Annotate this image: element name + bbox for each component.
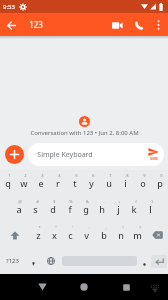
staticText: 123 bbox=[29, 19, 43, 30]
staticText: v bbox=[84, 229, 89, 241]
staticText: SMS bbox=[150, 156, 158, 161]
staticText: m bbox=[133, 229, 142, 241]
button[interactable] bbox=[76, 279, 92, 295]
button[interactable] bbox=[108, 16, 126, 34]
button[interactable]: t bbox=[66, 170, 83, 196]
staticText: ?123 bbox=[6, 257, 19, 265]
staticText: r bbox=[56, 177, 60, 189]
staticText: 2 bbox=[24, 173, 27, 178]
staticText: z bbox=[36, 229, 41, 241]
button[interactable]: n bbox=[112, 222, 129, 248]
staticText: ( bbox=[135, 199, 137, 204]
staticText: d bbox=[50, 203, 56, 215]
staticText: 5 bbox=[75, 173, 78, 178]
staticText: 1 bbox=[8, 173, 11, 178]
button[interactable]: p bbox=[151, 170, 168, 196]
staticText: * bbox=[38, 225, 41, 230]
button[interactable]: e bbox=[32, 170, 49, 196]
button[interactable]: d bbox=[44, 196, 61, 222]
button[interactable]: q bbox=[0, 170, 16, 196]
staticText: ) bbox=[151, 199, 153, 204]
staticText: x bbox=[52, 229, 57, 241]
staticText: u bbox=[106, 177, 112, 189]
staticText: % bbox=[69, 199, 73, 204]
staticText: ; bbox=[105, 225, 107, 230]
staticText: + bbox=[118, 199, 121, 204]
staticText: g bbox=[83, 203, 89, 215]
button[interactable]: r bbox=[49, 170, 66, 196]
staticText: 4 bbox=[58, 173, 61, 178]
button[interactable] bbox=[24, 248, 42, 274]
button[interactable]: u bbox=[100, 170, 117, 196]
staticText: @ bbox=[18, 199, 22, 204]
staticText: 7 bbox=[109, 173, 112, 178]
button[interactable] bbox=[34, 279, 50, 295]
button[interactable]: y bbox=[83, 170, 100, 196]
staticText: h bbox=[99, 203, 105, 215]
staticText: 8 bbox=[126, 173, 129, 178]
button[interactable]: f bbox=[61, 196, 78, 222]
button[interactable]: m bbox=[129, 222, 146, 248]
button[interactable]: b bbox=[95, 222, 112, 248]
button[interactable]: c bbox=[62, 222, 78, 248]
button[interactable] bbox=[5, 145, 24, 164]
button[interactable]: i bbox=[117, 170, 134, 196]
button[interactable] bbox=[60, 248, 139, 274]
staticText: a bbox=[16, 203, 22, 215]
staticText: w bbox=[20, 177, 28, 189]
button[interactable]: j bbox=[110, 196, 126, 222]
staticText: Conversation with 123 • Jun 2, 8:00 AM bbox=[30, 129, 139, 137]
staticText: e bbox=[38, 177, 44, 189]
staticText: y bbox=[89, 177, 94, 189]
staticText: - bbox=[103, 199, 105, 204]
staticText: l bbox=[149, 203, 152, 215]
button[interactable]: v bbox=[78, 222, 95, 248]
button[interactable]: SMS bbox=[148, 148, 164, 161]
button[interactable] bbox=[42, 248, 60, 274]
staticText: i bbox=[124, 177, 127, 189]
staticText: 9:53 bbox=[3, 3, 15, 11]
button[interactable]: x bbox=[46, 222, 62, 248]
staticText: ? bbox=[139, 225, 141, 230]
button[interactable]: Simple Keyboard bbox=[28, 143, 164, 166]
button[interactable]: ?123 bbox=[0, 248, 24, 274]
staticText: s bbox=[33, 203, 38, 215]
staticText: k bbox=[131, 203, 137, 215]
button[interactable] bbox=[130, 16, 148, 34]
staticText: 0 bbox=[160, 173, 163, 178]
staticText: o bbox=[140, 177, 146, 189]
button[interactable]: l bbox=[142, 196, 158, 222]
staticText: Simple Keyboard bbox=[37, 150, 93, 160]
staticText: : bbox=[88, 225, 90, 230]
button[interactable] bbox=[0, 222, 30, 248]
button[interactable] bbox=[139, 248, 149, 274]
button[interactable]: g bbox=[78, 196, 94, 222]
staticText: ' bbox=[72, 225, 73, 230]
staticText: b bbox=[101, 229, 107, 241]
staticText: f bbox=[68, 203, 72, 215]
staticText: 6 bbox=[92, 173, 95, 178]
staticText: $ bbox=[53, 199, 56, 204]
button[interactable]: a bbox=[10, 196, 27, 222]
button[interactable]: z bbox=[30, 222, 46, 248]
staticText: j bbox=[117, 203, 120, 215]
button[interactable] bbox=[146, 222, 168, 248]
staticText: ! bbox=[122, 225, 124, 230]
button[interactable] bbox=[149, 248, 168, 274]
button[interactable]: s bbox=[27, 196, 44, 222]
staticText: 9 bbox=[143, 173, 146, 178]
staticText: " bbox=[55, 225, 57, 230]
button[interactable]: o bbox=[134, 170, 151, 196]
staticText: q bbox=[5, 177, 11, 189]
button[interactable] bbox=[118, 279, 134, 295]
button[interactable] bbox=[0, 14, 22, 36]
button[interactable]: h bbox=[94, 196, 110, 222]
button[interactable]: w bbox=[16, 170, 32, 196]
button[interactable] bbox=[150, 17, 166, 33]
staticText: p bbox=[157, 177, 163, 189]
button[interactable] bbox=[147, 280, 163, 296]
staticText: & bbox=[86, 199, 89, 204]
button[interactable]: k bbox=[126, 196, 142, 222]
staticText: n bbox=[118, 229, 124, 241]
staticText: 3 bbox=[41, 173, 44, 178]
